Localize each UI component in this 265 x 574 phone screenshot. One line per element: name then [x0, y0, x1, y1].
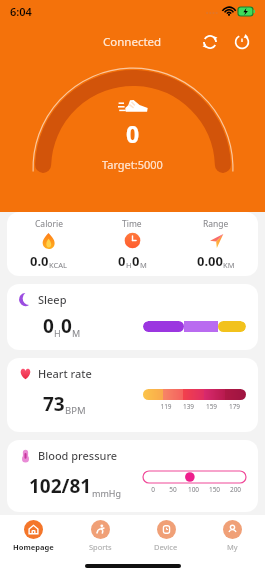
- staticText: My: [227, 542, 238, 552]
- staticText: Homepage: [13, 542, 54, 552]
- button[interactable]: Refresh: [227, 27, 257, 57]
- button[interactable]: Device: [133, 515, 199, 557]
- staticText: 6:04: [10, 4, 32, 19]
- staticText: 179: [223, 402, 246, 411]
- button[interactable]: Blood pressure: [7, 440, 258, 512]
- staticText: mmHg: [92, 487, 122, 499]
- staticText: Sleep: [38, 292, 67, 307]
- button[interactable]: Heart rate: [7, 358, 258, 432]
- staticText: 0: [132, 252, 140, 270]
- staticText: 0: [143, 485, 163, 494]
- staticText: 200: [225, 485, 246, 494]
- staticText: Heart rate: [38, 366, 92, 381]
- staticText: Connected: [103, 34, 162, 50]
- staticText: KM: [223, 260, 235, 270]
- staticText: 0: [118, 252, 126, 270]
- button[interactable]: Homepage: [0, 515, 67, 557]
- staticText: 139: [177, 402, 200, 411]
- staticText: 0: [43, 313, 54, 339]
- button[interactable]: Sleep: [7, 284, 258, 350]
- button[interactable]: Sports: [67, 515, 133, 557]
- staticText: BPM: [65, 404, 86, 417]
- staticText: Blood pressure: [38, 448, 118, 463]
- staticText: Range: [203, 218, 229, 230]
- staticText: Device: [154, 542, 178, 552]
- button[interactable]: Sync: [195, 27, 225, 57]
- staticText: 119: [155, 402, 177, 411]
- staticText: 159: [200, 402, 223, 411]
- staticText: 102/81: [29, 473, 92, 499]
- staticText: 73: [43, 391, 65, 417]
- staticText: KCAL: [49, 260, 67, 270]
- staticText: Target:5000: [102, 157, 163, 172]
- staticText: 150: [204, 485, 225, 494]
- staticText: M: [72, 327, 81, 339]
- staticText: Calorie: [35, 218, 63, 230]
- staticText: H: [54, 327, 61, 339]
- staticText: Time: [122, 218, 142, 230]
- staticText: 50: [163, 485, 183, 494]
- button[interactable]: Calorie: [7, 212, 258, 276]
- staticText: Sports: [89, 542, 112, 552]
- staticText: H: [126, 260, 132, 270]
- staticText: 0: [126, 118, 140, 149]
- button[interactable]: My: [199, 515, 265, 557]
- staticText: 100: [183, 485, 204, 494]
- staticText: M: [140, 260, 147, 270]
- staticText: 0: [61, 313, 72, 339]
- staticText: 0.0: [30, 252, 49, 270]
- staticText: 0.00: [197, 252, 223, 270]
